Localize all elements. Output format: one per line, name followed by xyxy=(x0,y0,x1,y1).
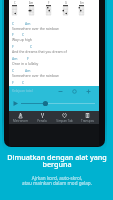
staticText: Metronom xyxy=(13,119,28,123)
button[interactable]: Reset speed xyxy=(71,88,77,94)
button[interactable]: Metronom xyxy=(9,111,31,124)
staticText: C xyxy=(22,80,25,85)
staticText: G xyxy=(65,1,67,5)
staticText: Em xyxy=(80,1,84,5)
staticText: C xyxy=(12,21,15,26)
staticText: Am xyxy=(29,1,34,5)
staticText: C xyxy=(22,32,25,37)
staticText: Transpos xyxy=(81,119,94,123)
staticText: Way up high xyxy=(12,37,32,42)
staticText: Am xyxy=(25,68,31,73)
staticText: F xyxy=(48,1,50,5)
staticText: F xyxy=(27,56,29,61)
staticText: F xyxy=(12,44,14,49)
staticText: Once in a lullaby xyxy=(12,61,39,66)
button[interactable]: Decrease speed xyxy=(57,88,63,94)
button[interactable]: Play xyxy=(11,99,20,108)
staticText: Penala xyxy=(37,119,47,123)
staticText: Simpan Tab xyxy=(56,119,73,123)
button[interactable]: Penala xyxy=(31,111,53,124)
staticText: Am xyxy=(25,21,31,26)
button[interactable]: Transpos xyxy=(76,111,99,124)
staticText: Am xyxy=(12,56,18,61)
staticText: F xyxy=(12,32,14,37)
staticText: Somewhere over the rainbow xyxy=(12,73,59,78)
staticText: Somewhere over the rainbow xyxy=(12,26,59,31)
staticText: Kelajuan tatal xyxy=(12,89,33,93)
staticText: C xyxy=(12,68,15,73)
staticText: Blue birds fly xyxy=(12,85,33,90)
staticText: C xyxy=(30,44,33,49)
staticText: Ajrkan kord, auto-skrol, atau mainkan da… xyxy=(12,175,102,186)
staticText: And the dreams that you dream of xyxy=(12,49,67,54)
staticText: F xyxy=(12,80,14,85)
button[interactable]: Simpan Tab xyxy=(53,111,76,124)
staticText: C xyxy=(14,1,16,5)
staticText: Dimuatkan dengan alat yang berguna xyxy=(2,152,112,170)
button[interactable]: Increase speed xyxy=(85,88,91,94)
